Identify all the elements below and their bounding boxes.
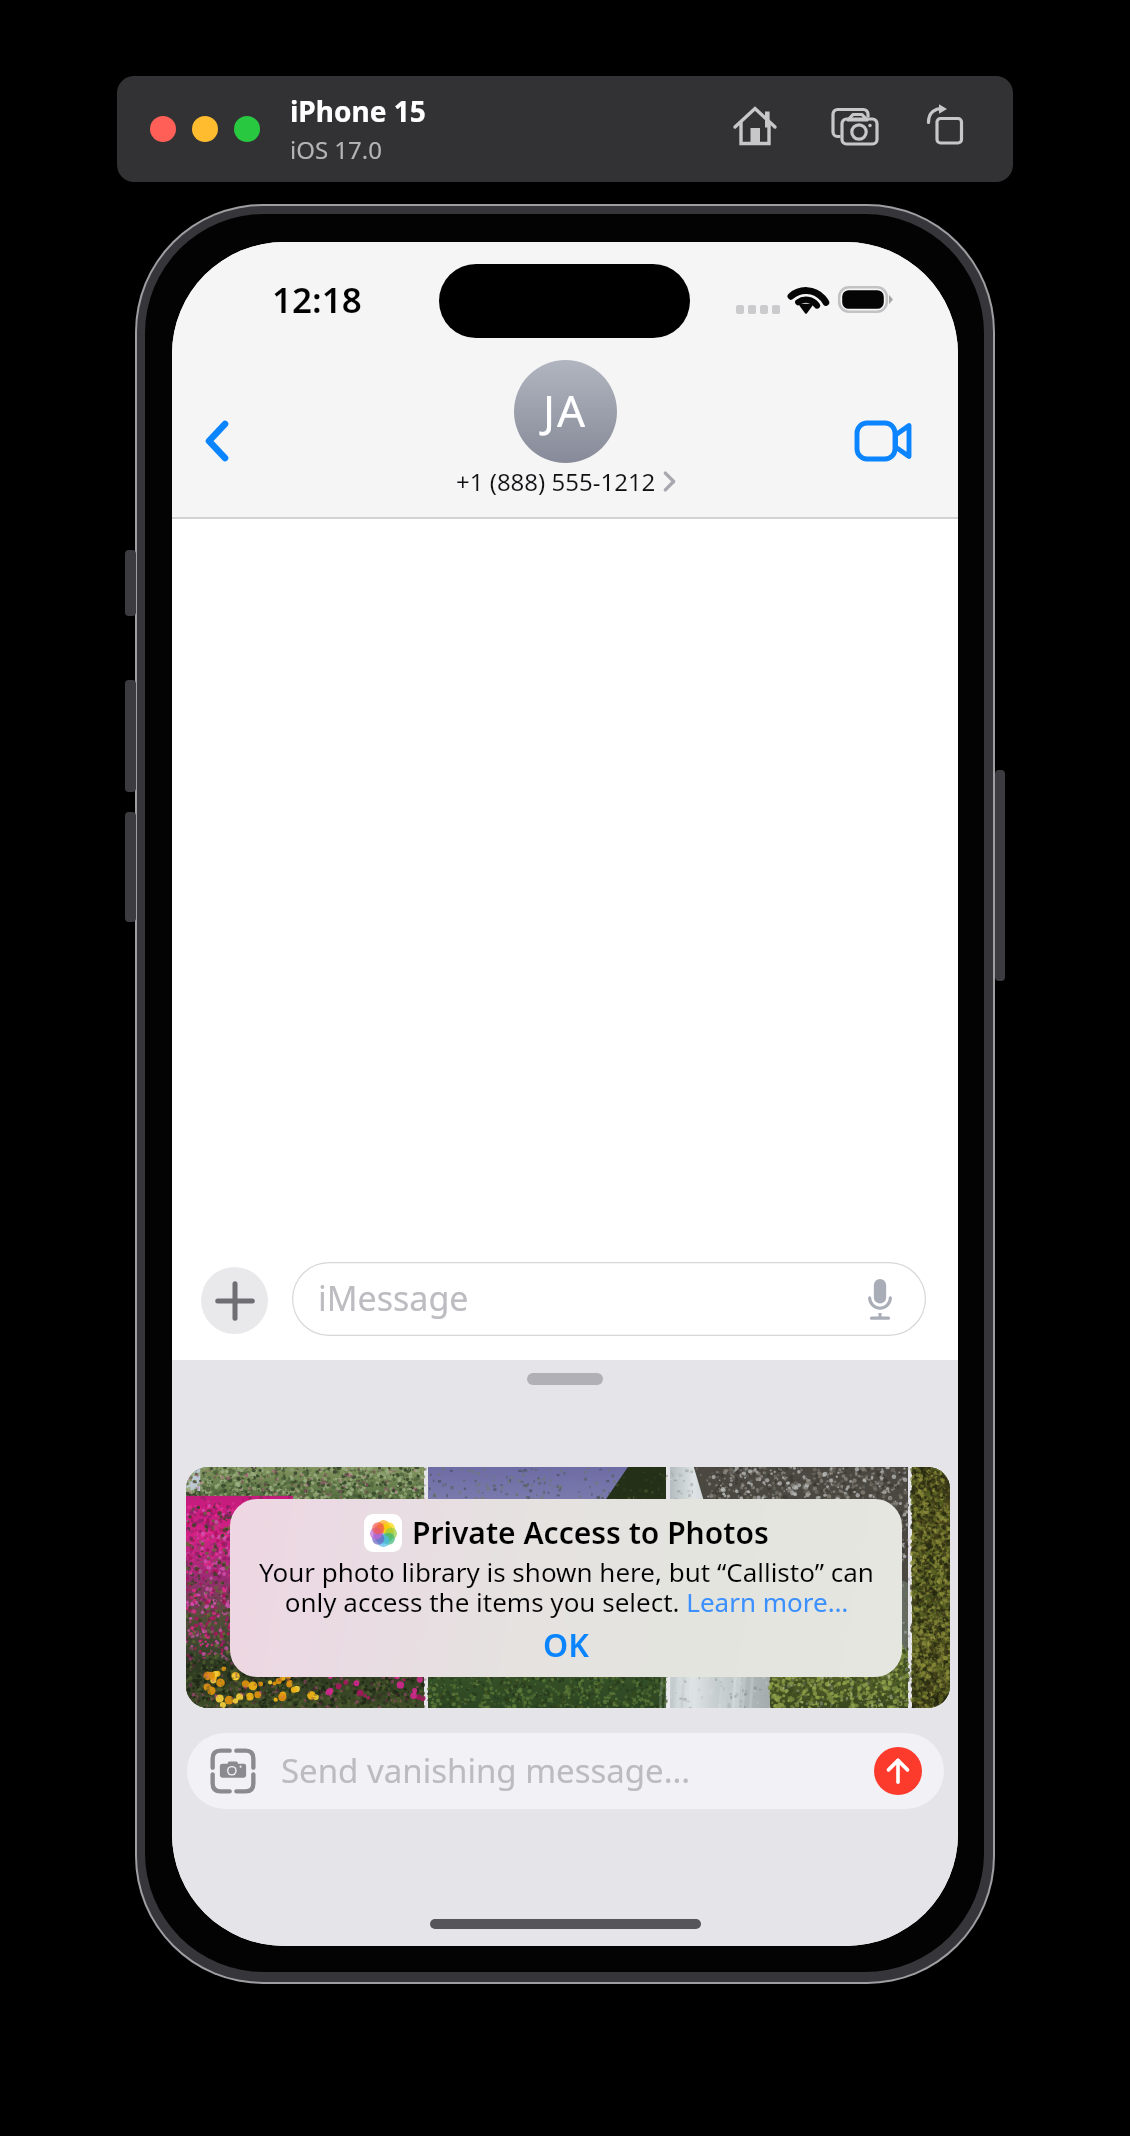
staticText: +1 (888) 555-1212: [456, 465, 656, 498]
staticText: OK: [543, 1623, 589, 1667]
staticText: Private Access to Photos: [412, 1512, 769, 1553]
staticText: iPhone 15: [290, 92, 426, 130]
staticText: Your photo library is shown here, but “C…: [259, 1554, 874, 1619]
staticText: JA: [543, 380, 588, 440]
button[interactable]: Back: [172, 401, 260, 489]
staticText: iMessage: [318, 1275, 469, 1321]
button[interactable]: Minimize: [192, 116, 218, 142]
button[interactable]: OK: [515, 1619, 617, 1671]
button[interactable]: Add attachment: [201, 1267, 268, 1334]
button[interactable]: JA: [456, 360, 675, 498]
button[interactable]: Send: [874, 1747, 922, 1795]
staticText: iOS 17.0: [290, 133, 382, 166]
button[interactable]: FaceTime video call: [829, 399, 917, 487]
button[interactable]: iMessage: [292, 1262, 926, 1336]
button[interactable]: Close: [150, 116, 176, 142]
button[interactable]: Send vanishing message...: [187, 1733, 944, 1809]
button[interactable]: Maximize: [234, 116, 260, 142]
button[interactable]: Screenshot: [827, 104, 879, 150]
staticText: 12:18: [272, 276, 362, 324]
button[interactable]: Home: [728, 104, 776, 150]
staticText: Send vanishing message...: [281, 1748, 691, 1793]
button[interactable]: Rotate: [922, 104, 968, 150]
